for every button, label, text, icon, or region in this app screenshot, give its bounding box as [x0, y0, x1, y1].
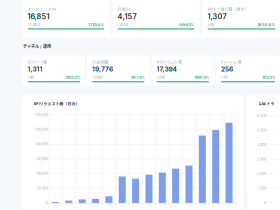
staticText: 17,394 [156, 65, 176, 73]
staticText: 2614.0% [257, 22, 275, 27]
staticText: 120,000 [34, 112, 47, 117]
staticText: 80,000 [36, 142, 47, 146]
staticText: 5,000 [257, 128, 266, 132]
staticText: 19,776 [92, 65, 113, 73]
staticText: 1977.6% [131, 75, 144, 80]
staticText: APIキー発行数（累計） [208, 7, 249, 12]
staticText: / 1,500 [28, 22, 41, 27]
button[interactable] [0, 0, 280, 210]
button[interactable] [0, 0, 280, 210]
staticText: 6,000 [257, 113, 266, 118]
staticText: 3,000 [257, 157, 266, 161]
staticText: 20,000 [36, 186, 47, 190]
button[interactable] [0, 0, 280, 210]
button[interactable] [0, 0, 280, 210]
staticText: 4,000 [257, 142, 266, 147]
staticText: 4,157 [117, 12, 136, 21]
staticText: 0 [264, 200, 266, 205]
staticText: 16,851 [27, 12, 49, 21]
staticText: SC表示回数 [92, 60, 108, 64]
staticText: 100,000 [34, 127, 47, 131]
staticText: / 80 [28, 75, 34, 80]
staticText: / 30 [221, 75, 227, 80]
staticText: 1123.4% [88, 22, 104, 27]
button[interactable] [0, 0, 280, 210]
staticText: / 200 [157, 75, 165, 80]
staticText: 1,000 [257, 186, 266, 190]
staticText: / 1,000 [92, 75, 102, 80]
button[interactable] [0, 0, 280, 210]
staticText: APIリクエスト数（日次） [33, 101, 79, 106]
staticText: 月間UU [118, 7, 132, 12]
staticText: 60,000 [36, 156, 47, 161]
staticText: 999.2% [179, 22, 194, 27]
staticText: 40,000 [36, 171, 47, 176]
staticText: オーガニックPV [28, 7, 56, 12]
staticText: MCPリクエスト数 [157, 60, 182, 64]
staticText: 1,311 [27, 65, 42, 73]
staticText: SCクリック数 [28, 60, 47, 64]
staticText: 2622.0% [66, 75, 80, 80]
staticText: 1,307 [207, 12, 226, 21]
staticText: 8697.0% [195, 75, 209, 80]
staticText: / 400 [118, 22, 129, 27]
button[interactable] [0, 0, 280, 210]
staticText: 0 [45, 201, 47, 205]
staticText: チャネル / 運用 [23, 43, 51, 49]
staticText: 256 [221, 65, 233, 73]
staticText: 2,000 [257, 171, 266, 176]
staticText: / 50 [208, 22, 215, 27]
staticText: Xメンション数 [221, 60, 241, 64]
staticText: 853.3% [263, 75, 275, 80]
staticText: GA4 トラ [258, 101, 274, 106]
